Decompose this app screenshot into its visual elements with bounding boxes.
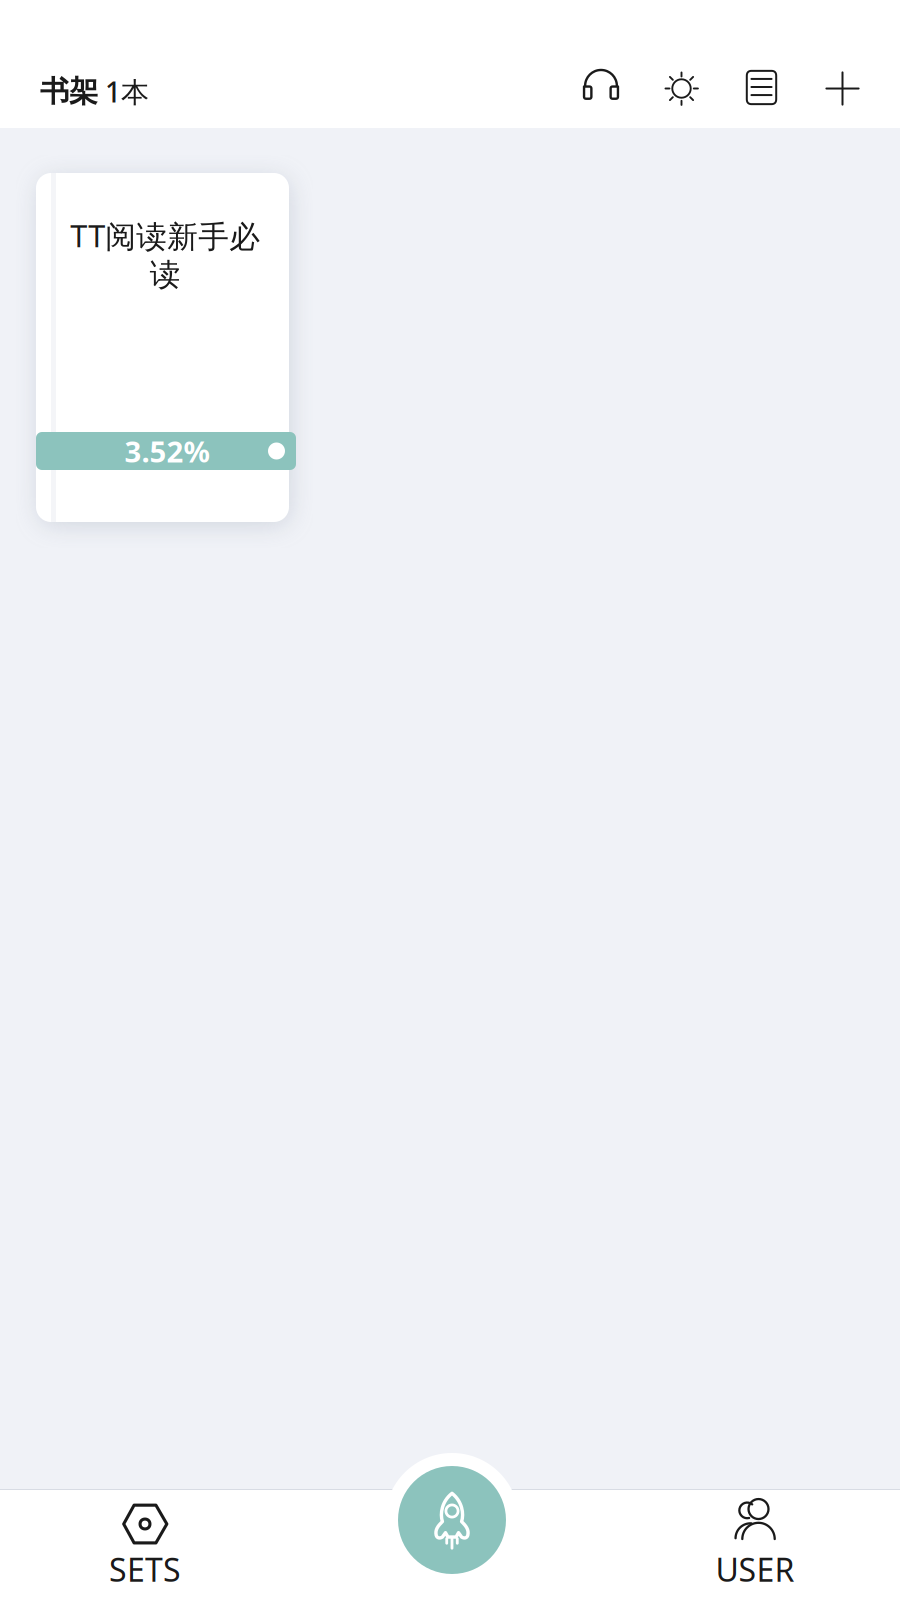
- button[interactable]: Add book: [825, 71, 860, 106]
- button[interactable]: USER: [610, 1457, 900, 1600]
- button[interactable]: Local books: [737, 63, 786, 112]
- staticText: 书架: [40, 74, 98, 110]
- staticText: USER: [715, 1548, 794, 1590]
- staticText: TT阅读新手必读: [70, 215, 260, 294]
- button[interactable]: TT阅读新手必读: [36, 173, 289, 522]
- button[interactable]: Brightness: [661, 68, 702, 109]
- staticText: 3.52%: [124, 431, 209, 470]
- button[interactable]: Listen: [578, 64, 624, 110]
- staticText: SETS: [109, 1548, 181, 1590]
- button[interactable]: SETS: [0, 1457, 290, 1600]
- button[interactable]: Discover: [385, 1453, 519, 1587]
- staticText: 1本: [98, 73, 149, 110]
